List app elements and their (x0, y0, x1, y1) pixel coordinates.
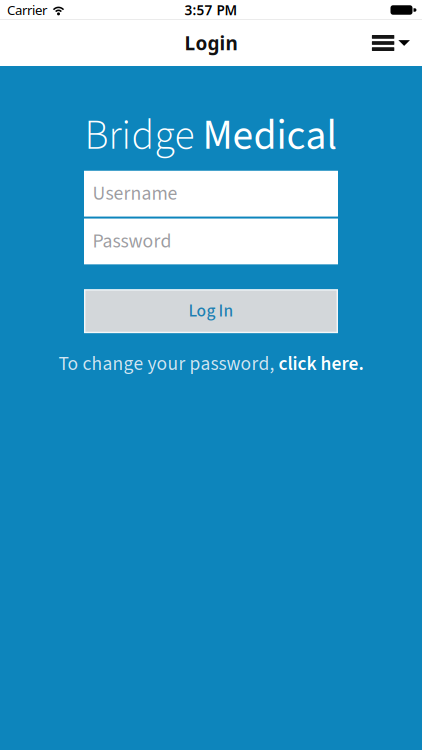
button[interactable]: Password (84, 219, 338, 264)
staticText: Password (92, 227, 171, 255)
staticText: Log In (188, 299, 233, 324)
staticText: Bridge Medical (84, 107, 337, 165)
button[interactable]: Username (84, 171, 338, 217)
button[interactable]: Log In (84, 289, 338, 333)
staticText: To change your password, (58, 350, 278, 378)
button[interactable]: click here. (278, 350, 363, 378)
staticText: 3:57 PM (184, 1, 237, 19)
staticText: click here. (278, 350, 363, 378)
button[interactable]: Menu (372, 35, 422, 51)
staticText: Login (184, 30, 237, 56)
staticText: Username (92, 180, 177, 208)
staticText: Carrier (7, 1, 47, 19)
